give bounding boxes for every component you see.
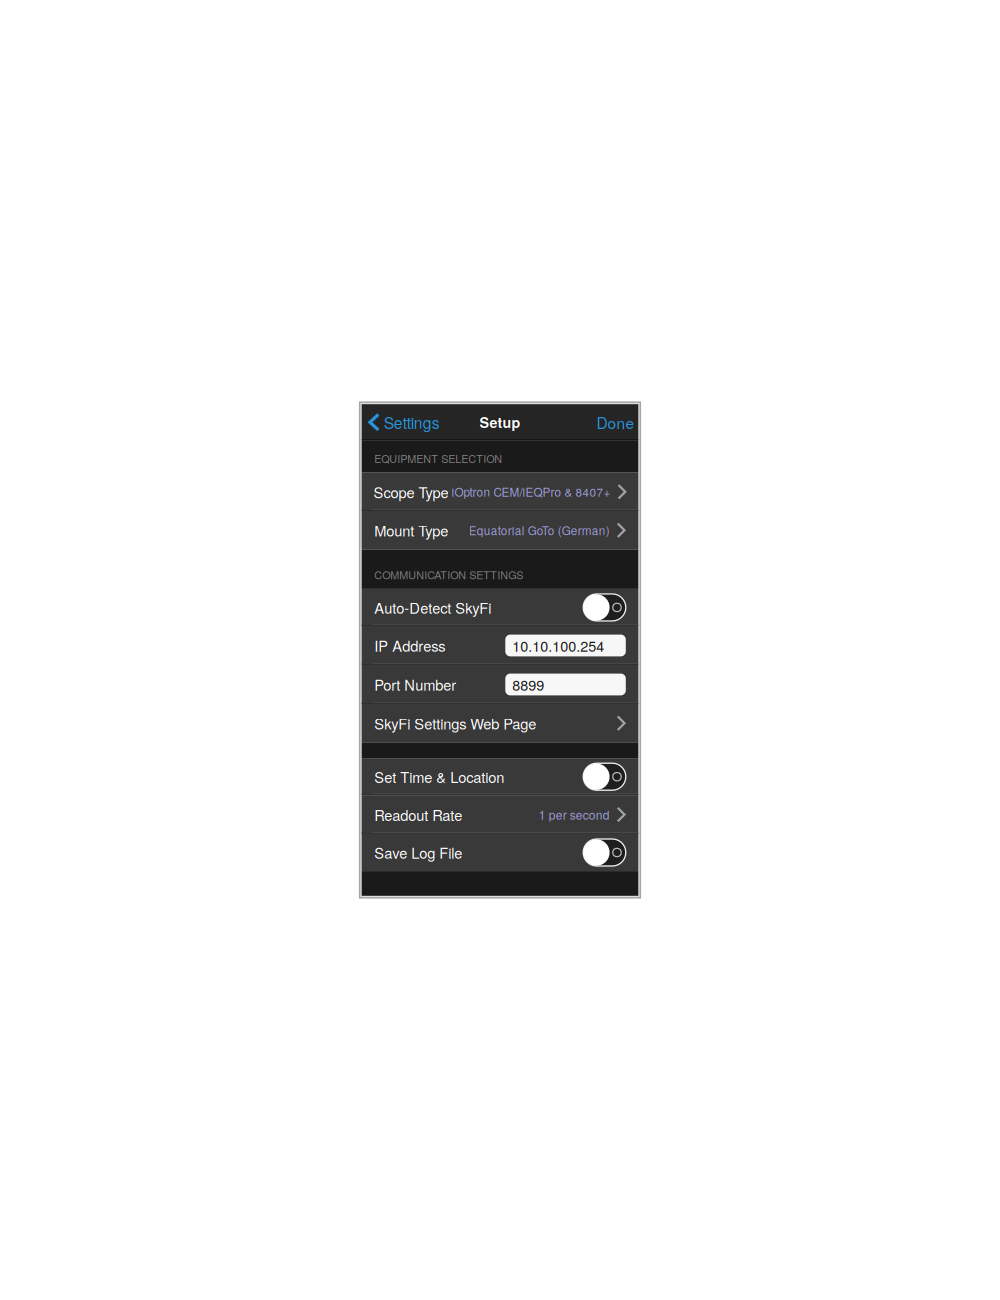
staticText: Setup <box>479 412 520 432</box>
staticText: Mount Type <box>374 520 448 541</box>
staticText: Done <box>596 411 634 433</box>
staticText: 8899 <box>512 674 544 695</box>
staticText: Readout Rate <box>374 804 462 825</box>
button[interactable]: Save Log File <box>362 834 638 871</box>
button[interactable]: 10.10.100.254 <box>505 635 626 656</box>
staticText: COMMUNICATION SETTINGS <box>374 567 523 582</box>
button[interactable]: Mount Type <box>362 511 638 549</box>
button[interactable]: Set Time & Location <box>362 758 638 795</box>
staticText: Settings <box>384 411 440 433</box>
button[interactable]: Readout Rate <box>362 795 638 834</box>
button[interactable]: Scope Type <box>362 473 638 511</box>
staticText: Set Time & Location <box>374 766 504 787</box>
button[interactable]: Done <box>596 404 638 440</box>
button[interactable]: Auto-Detect SkyFi <box>362 589 638 626</box>
staticText: IP Address <box>374 635 445 656</box>
staticText: 1 per second <box>539 806 610 823</box>
staticText: EQUIPMENT SELECTION <box>374 451 502 466</box>
staticText: Equatorial GoTo (German) <box>469 522 610 539</box>
staticText: SkyFi Settings Web Page <box>374 713 536 734</box>
staticText: iOptron CEM/iEQPro & 8407+ <box>451 483 610 500</box>
staticText: 10.10.100.254 <box>512 635 604 656</box>
staticText: Save Log File <box>374 842 462 863</box>
button[interactable]: Settings <box>362 404 440 440</box>
button[interactable]: SkyFi Settings Web Page <box>362 704 638 742</box>
staticText: Auto-Detect SkyFi <box>374 597 491 618</box>
staticText: Scope Type <box>373 481 448 502</box>
staticText: Port Number <box>374 674 456 695</box>
button[interactable]: 8899 <box>505 674 626 695</box>
